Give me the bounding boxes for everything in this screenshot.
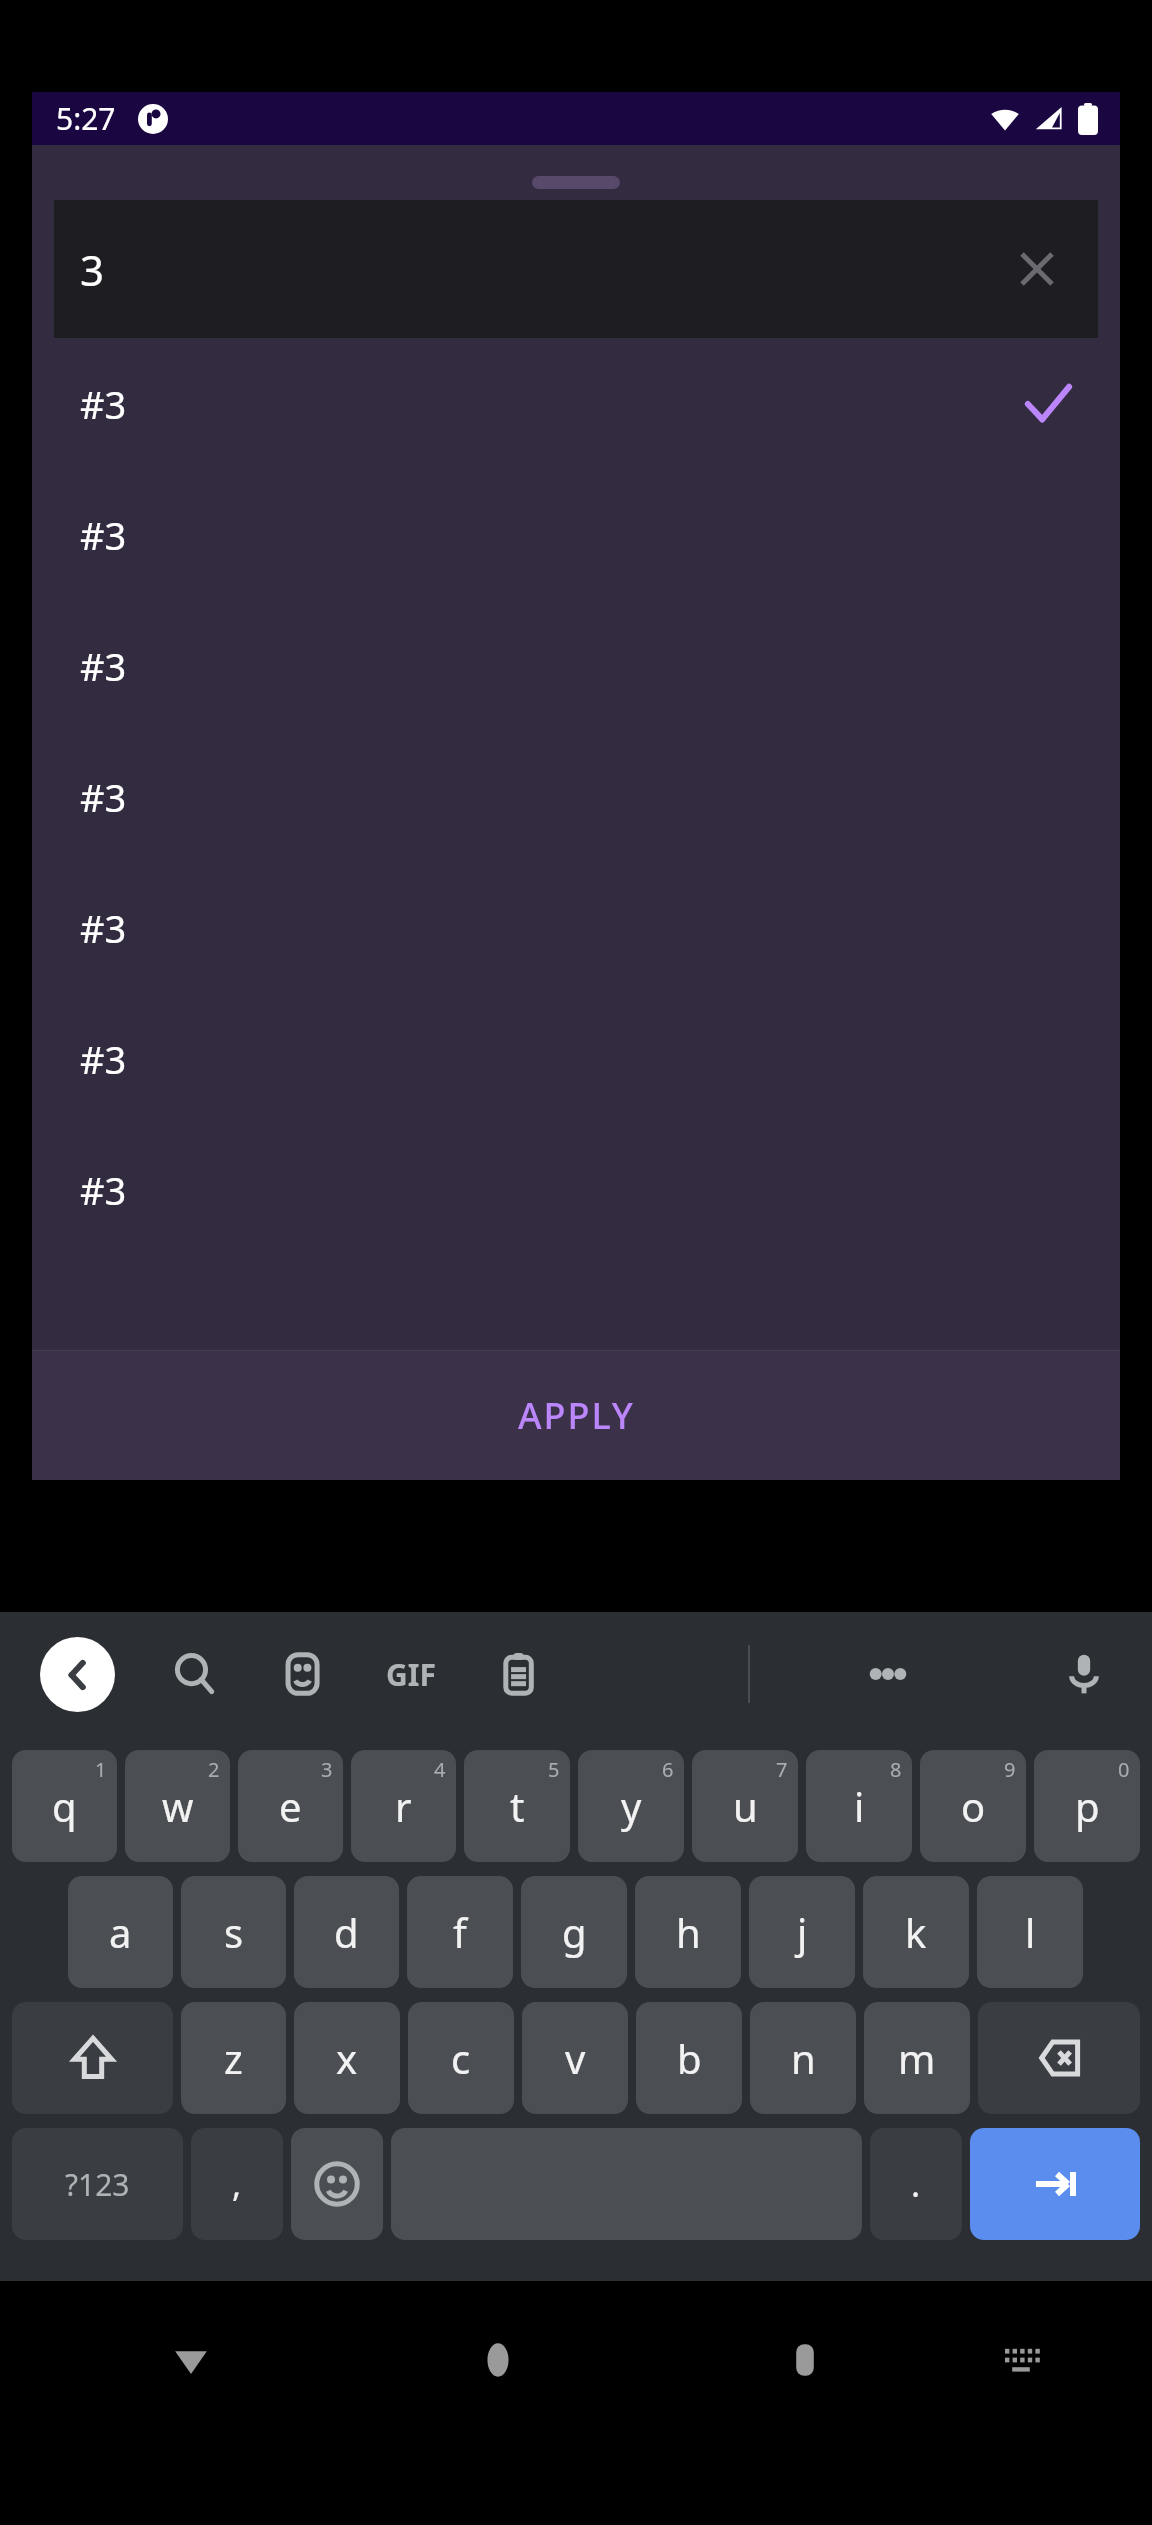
button[interactable]: Switch keyboard <box>981 2320 1061 2400</box>
button[interactable]: u <box>692 1750 798 1862</box>
button[interactable]: m <box>864 2002 970 2114</box>
button[interactable]: Stickers <box>275 1646 331 1702</box>
staticText: c <box>451 2031 471 2085</box>
staticText: a <box>109 1905 132 1959</box>
staticText: 7 <box>776 1756 788 1783</box>
button[interactable]: GIF <box>383 1646 439 1702</box>
staticText: z <box>224 2031 243 2085</box>
button[interactable]: z <box>181 2002 286 2114</box>
button[interactable]: . <box>870 2128 962 2240</box>
button[interactable]: h <box>635 1876 741 1988</box>
staticText: 0 <box>1118 1756 1130 1783</box>
button[interactable]: l <box>977 1876 1083 1988</box>
staticText: #3 <box>80 1164 127 1216</box>
staticText: s <box>224 1905 244 1959</box>
staticText: 8 <box>890 1756 902 1783</box>
staticText: o <box>961 1779 986 1833</box>
button[interactable]: Search <box>167 1646 223 1702</box>
staticText: #3 <box>80 771 127 823</box>
staticText: b <box>677 2031 702 2085</box>
staticText: y <box>621 1779 642 1833</box>
button[interactable]: Recents <box>765 2320 845 2400</box>
button[interactable]: q <box>12 1750 117 1862</box>
button[interactable]: 3 <box>54 200 1098 338</box>
button[interactable]: Back <box>151 2320 231 2400</box>
button[interactable]: t <box>464 1750 570 1862</box>
staticText: i <box>854 1779 865 1833</box>
button[interactable]: #3 <box>32 600 1120 731</box>
button[interactable]: Clipboard <box>491 1646 547 1702</box>
button[interactable]: v <box>522 2002 628 2114</box>
button[interactable]: c <box>408 2002 514 2114</box>
staticText: 4 <box>434 1756 446 1783</box>
button[interactable]: o <box>920 1750 1026 1862</box>
staticText: u <box>733 1779 758 1833</box>
button[interactable]: i <box>806 1750 912 1862</box>
staticText: 5:27 <box>56 98 116 139</box>
button[interactable]: y <box>578 1750 684 1862</box>
button[interactable]: Home <box>458 2320 538 2400</box>
button[interactable]: Voice input <box>1056 1646 1112 1702</box>
staticText: p <box>1075 1779 1100 1833</box>
button[interactable]: p <box>1034 1750 1140 1862</box>
staticText: d <box>334 1905 359 1959</box>
staticText: j <box>797 1905 808 1959</box>
button[interactable]: f <box>407 1876 513 1988</box>
staticText: 5 <box>548 1756 560 1783</box>
staticText: APPLY <box>518 1391 635 1440</box>
staticText: 3 <box>321 1756 333 1783</box>
staticText: #3 <box>80 378 127 430</box>
staticText: #3 <box>80 902 127 954</box>
button[interactable]: #3 <box>32 338 1120 469</box>
staticText: . <box>911 2161 921 2207</box>
button[interactable]: s <box>181 1876 286 1988</box>
staticText: ?123 <box>65 2164 130 2205</box>
staticText: GIF <box>386 1654 436 1695</box>
staticText: h <box>676 1905 701 1959</box>
button[interactable]: ?123 <box>12 2128 183 2240</box>
staticText: #3 <box>80 640 127 692</box>
button[interactable]: Clear text <box>1006 238 1068 300</box>
staticText: #3 <box>80 509 127 561</box>
button[interactable]: #3 <box>32 469 1120 600</box>
button[interactable]: Backspace <box>978 2002 1140 2114</box>
button[interactable]: j <box>749 1876 855 1988</box>
button[interactable]: k <box>863 1876 969 1988</box>
button[interactable]: a <box>68 1876 173 1988</box>
button[interactable]: x <box>294 2002 400 2114</box>
button[interactable]: e <box>238 1750 343 1862</box>
staticText: 2 <box>208 1756 220 1783</box>
button[interactable]: Emoji <box>291 2128 383 2240</box>
button[interactable]: Shift <box>12 2002 173 2114</box>
staticText: l <box>1025 1905 1036 1959</box>
button[interactable]: w <box>125 1750 230 1862</box>
staticText: q <box>52 1779 77 1833</box>
staticText: , <box>232 2161 242 2207</box>
staticText: 6 <box>662 1756 674 1783</box>
staticText: r <box>395 1779 412 1833</box>
button[interactable]: r <box>351 1750 456 1862</box>
button[interactable]: More options <box>860 1646 916 1702</box>
staticText: 3 <box>80 241 105 298</box>
button[interactable]: Enter <box>970 2128 1140 2240</box>
staticText: g <box>562 1905 587 1959</box>
button[interactable]: n <box>750 2002 856 2114</box>
button[interactable]: APPLY <box>32 1351 1120 1480</box>
staticText: m <box>898 2031 936 2085</box>
button[interactable]: , <box>191 2128 283 2240</box>
button[interactable]: g <box>521 1876 627 1988</box>
button[interactable]: Back <box>40 1637 115 1712</box>
button[interactable]: #3 <box>32 731 1120 862</box>
staticText: w <box>162 1779 194 1833</box>
staticText: n <box>791 2031 816 2085</box>
staticText: x <box>336 2031 358 2085</box>
button[interactable]: #3 <box>32 993 1120 1124</box>
staticText: f <box>453 1905 467 1959</box>
button[interactable]: #3 <box>32 862 1120 993</box>
button[interactable]: #3 <box>32 1124 1120 1255</box>
staticText: v <box>565 2031 586 2085</box>
button[interactable]: b <box>636 2002 742 2114</box>
button[interactable]: d <box>294 1876 399 1988</box>
staticText: k <box>905 1905 927 1959</box>
